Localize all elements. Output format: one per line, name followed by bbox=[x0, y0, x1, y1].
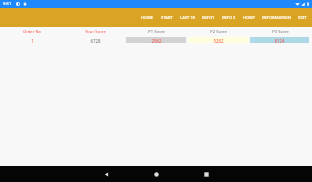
staticText: INFORMATION bbox=[262, 15, 291, 20]
button[interactable]: Back bbox=[95, 166, 117, 182]
staticText: HOW? bbox=[243, 15, 255, 20]
staticText: 9:51 bbox=[3, 1, 12, 7]
staticText: 5262 bbox=[213, 38, 224, 44]
button[interactable]: INFORMATION bbox=[262, 15, 291, 20]
button[interactable]: EXIT bbox=[298, 15, 307, 20]
button[interactable]: 6728 bbox=[65, 37, 125, 43]
button[interactable]: 8124 bbox=[250, 37, 309, 43]
staticText: LAST 10 bbox=[180, 15, 195, 20]
button[interactable]: LAST 10 bbox=[180, 15, 195, 20]
button[interactable]: INFO1 bbox=[202, 15, 215, 20]
button[interactable]: 1 bbox=[2, 37, 62, 43]
staticText: P1 Score bbox=[148, 29, 165, 35]
staticText: Order No bbox=[23, 29, 41, 35]
staticText: START bbox=[161, 15, 173, 20]
button[interactable]: START bbox=[161, 15, 173, 20]
staticText: P2 Score bbox=[210, 29, 227, 35]
staticText: HOME bbox=[141, 15, 154, 20]
staticText: EXIT bbox=[298, 15, 307, 20]
button[interactable]: Recent apps bbox=[195, 166, 217, 182]
staticText: P3 Score bbox=[272, 29, 289, 35]
staticText: 6728 bbox=[90, 38, 101, 44]
staticText: 8124 bbox=[274, 38, 285, 44]
staticText: 1 bbox=[31, 38, 34, 44]
button[interactable]: 2962 bbox=[126, 37, 186, 43]
button[interactable]: 5262 bbox=[188, 37, 249, 43]
button[interactable]: HOME bbox=[141, 15, 154, 20]
staticText: 2962 bbox=[151, 38, 162, 44]
button[interactable]: HOW? bbox=[243, 15, 255, 20]
staticText: INFO 2 bbox=[222, 15, 236, 20]
staticText: Your Score bbox=[85, 29, 106, 35]
button[interactable]: INFO 2 bbox=[222, 15, 236, 20]
button[interactable]: Home bbox=[145, 166, 167, 182]
staticText: INFO1 bbox=[202, 15, 215, 20]
